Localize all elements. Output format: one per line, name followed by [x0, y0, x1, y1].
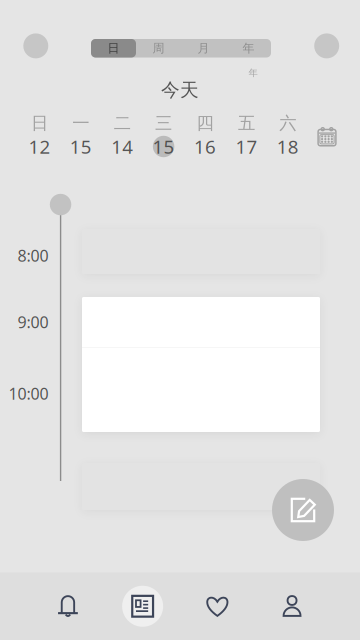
staticText: 三: [155, 113, 172, 134]
staticText: 14: [111, 134, 133, 159]
staticText: 18: [277, 134, 299, 159]
button[interactable]: Open calendar: [313, 122, 341, 150]
staticText: 9:00: [17, 311, 48, 333]
button[interactable]: 周: [136, 39, 181, 57]
staticText: 8:00: [17, 245, 48, 266]
button[interactable]: Favorites: [180, 572, 255, 640]
button[interactable]: 日: [19, 113, 60, 159]
button[interactable]: 二: [101, 113, 143, 159]
staticText: 二: [114, 113, 131, 134]
staticText: 周: [152, 41, 164, 56]
button[interactable]: 四: [184, 113, 226, 159]
button[interactable]: 年: [226, 39, 271, 57]
button[interactable]: Compose: [272, 479, 334, 541]
staticText: 年: [248, 67, 257, 79]
staticText: 年: [242, 41, 254, 56]
staticText: 16: [194, 134, 216, 159]
button[interactable]: News: [105, 572, 180, 640]
button[interactable]: Notifications: [31, 572, 105, 640]
staticText: 12: [28, 134, 50, 159]
button[interactable]: Settings: [314, 33, 339, 58]
staticText: 15: [70, 134, 92, 159]
staticText: 日: [31, 113, 48, 134]
button[interactable]: 日: [91, 39, 136, 57]
staticText: 日: [107, 41, 119, 56]
staticText: 17: [235, 134, 257, 159]
staticText: 10:00: [8, 383, 48, 404]
staticText: 今天: [161, 78, 199, 101]
staticText: 六: [279, 113, 296, 134]
button[interactable]: 三: [143, 113, 184, 159]
button[interactable]: 月: [181, 39, 226, 57]
staticText: 一: [72, 113, 89, 134]
staticText: 五: [238, 113, 255, 134]
button[interactable]: 六: [267, 113, 308, 159]
button[interactable]: Profile: [23, 33, 48, 58]
button[interactable]: Account: [255, 572, 329, 640]
staticText: 15: [153, 134, 175, 159]
staticText: 四: [196, 113, 213, 134]
button[interactable]: 五: [226, 113, 267, 159]
button[interactable]: 一: [60, 113, 101, 159]
staticText: 月: [197, 41, 209, 56]
